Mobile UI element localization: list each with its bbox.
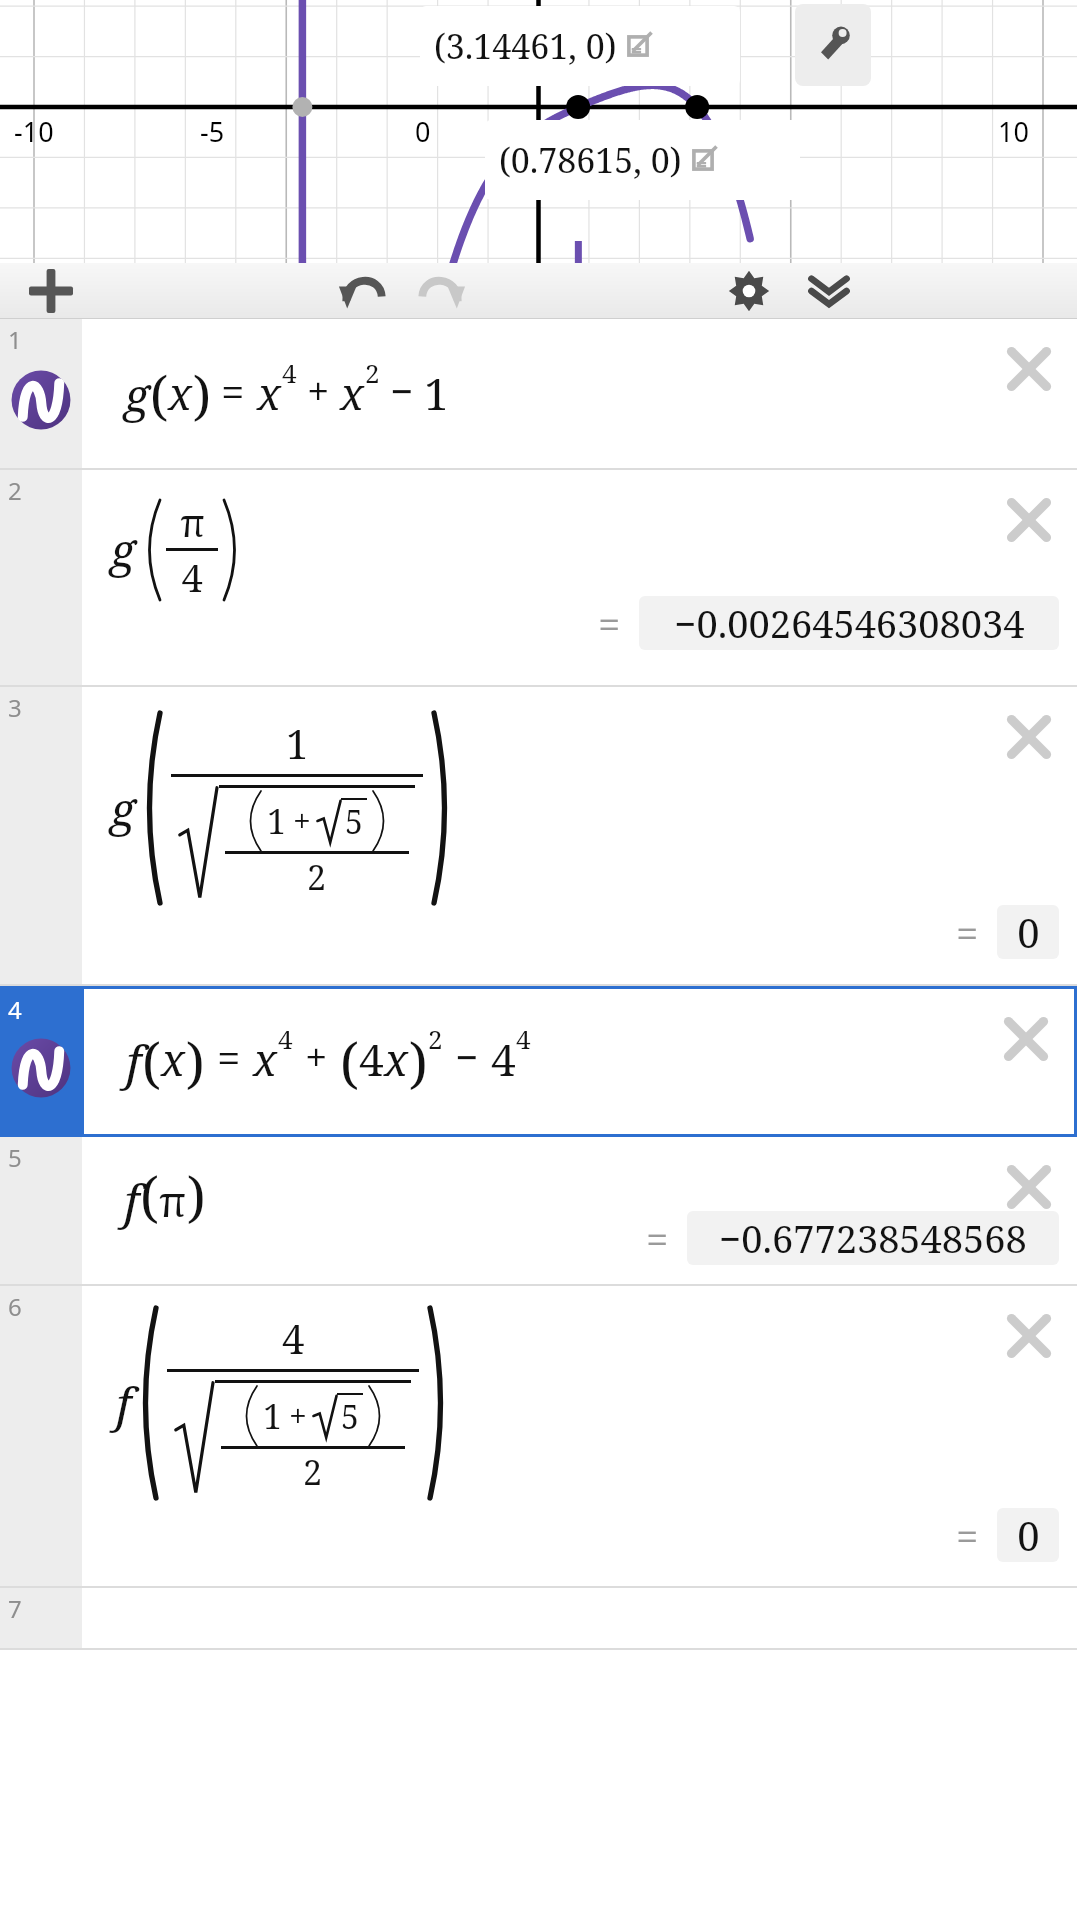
staticText: 1: [286, 716, 309, 770]
staticText: f: [116, 1371, 132, 1436]
staticText: +: [289, 1394, 307, 1438]
staticText: 1: [424, 363, 449, 423]
button[interactable]: Redo: [404, 265, 482, 317]
staticText: ): [193, 359, 211, 430]
button[interactable]: 3: [0, 687, 1077, 984]
staticText: 4: [491, 1029, 516, 1089]
staticText: 5: [8, 1141, 22, 1174]
button[interactable]: Settings: [712, 265, 786, 317]
button[interactable]: 1: [0, 319, 1077, 468]
staticText: ): [186, 1025, 205, 1099]
staticText: 1: [263, 1393, 283, 1439]
button[interactable]: −0.677238548568: [687, 1211, 1059, 1265]
staticText: 2: [365, 355, 380, 390]
staticText: x: [257, 363, 282, 423]
staticText: -5: [200, 113, 225, 150]
staticText: 4: [181, 551, 203, 603]
staticText: −: [390, 363, 414, 417]
button[interactable]: Tools: [795, 4, 871, 86]
staticText: −0.00264546308034: [674, 597, 1025, 649]
staticText: 2: [303, 1449, 323, 1495]
staticText: x: [340, 363, 365, 423]
staticText: −0.677238548568: [719, 1212, 1027, 1264]
staticText: 4: [359, 1029, 384, 1089]
staticText: =: [221, 363, 245, 420]
staticText: (: [340, 1025, 359, 1099]
staticText: x: [168, 363, 193, 423]
button[interactable]: (0.78615, 0): [485, 120, 800, 200]
staticText: 0: [415, 113, 431, 150]
staticText: ): [409, 1025, 428, 1099]
staticText: =: [956, 905, 979, 959]
staticText: g: [124, 363, 150, 426]
staticText: (: [140, 1159, 159, 1233]
staticText: −: [455, 1029, 479, 1083]
staticText: =: [598, 596, 621, 650]
staticText: =: [956, 1508, 979, 1562]
staticText: x: [161, 1029, 186, 1089]
staticText: f: [124, 1168, 140, 1233]
button[interactable]: (3.14461, 0): [420, 6, 740, 86]
staticText: f: [126, 1029, 142, 1094]
staticText: +: [305, 1029, 328, 1083]
button[interactable]: 6: [0, 1286, 1077, 1586]
staticText: (: [142, 1025, 161, 1099]
button[interactable]: −0.00264546308034: [639, 596, 1059, 650]
button[interactable]: 5: [0, 1137, 1077, 1284]
staticText: 2: [307, 854, 327, 900]
button[interactable]: Delete row 4: [990, 1003, 1062, 1075]
button[interactable]: Delete row 2: [993, 484, 1065, 556]
staticText: (0.78615, 0): [499, 137, 682, 183]
button[interactable]: Add input row: [12, 265, 90, 317]
staticText: 0: [1017, 905, 1040, 959]
staticText: 4: [8, 993, 22, 1026]
staticText: 4: [282, 1311, 305, 1365]
staticText: x: [384, 1029, 409, 1089]
staticText: =: [646, 1211, 669, 1265]
button[interactable]: Collapse: [792, 265, 866, 317]
staticText: (: [150, 359, 168, 430]
button[interactable]: 4: [0, 989, 1077, 1134]
staticText: 1: [267, 798, 287, 844]
staticText: 3: [8, 691, 22, 724]
button[interactable]: Delete row 3: [993, 701, 1065, 773]
button[interactable]: 0: [997, 1508, 1059, 1562]
staticText: g: [110, 777, 136, 840]
staticText: 5: [341, 1395, 359, 1439]
staticText: π: [180, 496, 205, 548]
staticText: 0: [1017, 1508, 1040, 1562]
staticText: +: [293, 799, 311, 843]
staticText: 4: [278, 1021, 293, 1056]
button[interactable]: 7: [0, 1588, 1077, 1648]
button[interactable]: Delete row 5: [993, 1151, 1065, 1223]
button[interactable]: Delete row 6: [993, 1300, 1065, 1372]
staticText: 10: [998, 113, 1029, 150]
staticText: 5: [345, 800, 363, 844]
button[interactable]: Undo: [322, 265, 400, 317]
staticText: ): [187, 1159, 206, 1233]
staticText: 6: [8, 1290, 22, 1323]
staticText: -10: [14, 113, 54, 150]
button[interactable]: 2: [0, 470, 1077, 685]
staticText: =: [217, 1029, 241, 1086]
staticText: 2: [8, 474, 22, 507]
button[interactable]: Delete row 1: [993, 333, 1065, 405]
staticText: 1: [8, 323, 22, 356]
staticText: g: [110, 518, 136, 581]
staticText: x: [253, 1029, 278, 1089]
staticText: 4: [282, 355, 297, 390]
staticText: 4: [516, 1021, 531, 1056]
button[interactable]: 0: [997, 905, 1059, 959]
staticText: 2: [428, 1021, 443, 1056]
staticText: (3.14461, 0): [434, 23, 617, 69]
staticText: +: [307, 363, 330, 417]
staticText: π: [159, 1172, 187, 1229]
staticText: 7: [8, 1592, 22, 1625]
